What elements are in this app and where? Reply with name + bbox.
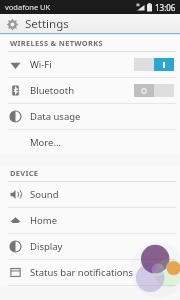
staticText: Display — [30, 240, 174, 253]
button[interactable]: Sound — [0, 182, 180, 207]
staticText: Wi-Fi — [30, 58, 134, 71]
button[interactable]: Wi-Fi on — [134, 58, 174, 71]
staticText: Sound — [30, 188, 174, 201]
button[interactable]: Bluetooth — [0, 78, 180, 103]
button[interactable]: Home — [0, 208, 180, 233]
staticText: vodafone UK — [5, 2, 51, 12]
staticText: Data usage — [30, 110, 174, 123]
staticText: More... — [30, 136, 174, 149]
button[interactable]: More... — [0, 130, 180, 155]
staticText: Settings — [25, 16, 69, 32]
staticText: 13:06 — [155, 2, 176, 13]
staticText: DEVICE — [10, 168, 39, 178]
staticText: Bluetooth — [30, 84, 134, 97]
button[interactable]: Data usage — [0, 104, 180, 129]
staticText: Status bar notifications — [30, 266, 174, 279]
button[interactable]: Wi-Fi — [0, 52, 180, 77]
button[interactable]: Status bar notifications — [0, 260, 180, 285]
staticText: Home — [30, 214, 174, 227]
button[interactable]: Bluetooth off — [134, 84, 174, 97]
staticText: WIRELESS & NETWORKS — [10, 38, 103, 48]
button[interactable]: Display — [0, 234, 180, 259]
button[interactable]: Settings — [0, 14, 180, 33]
